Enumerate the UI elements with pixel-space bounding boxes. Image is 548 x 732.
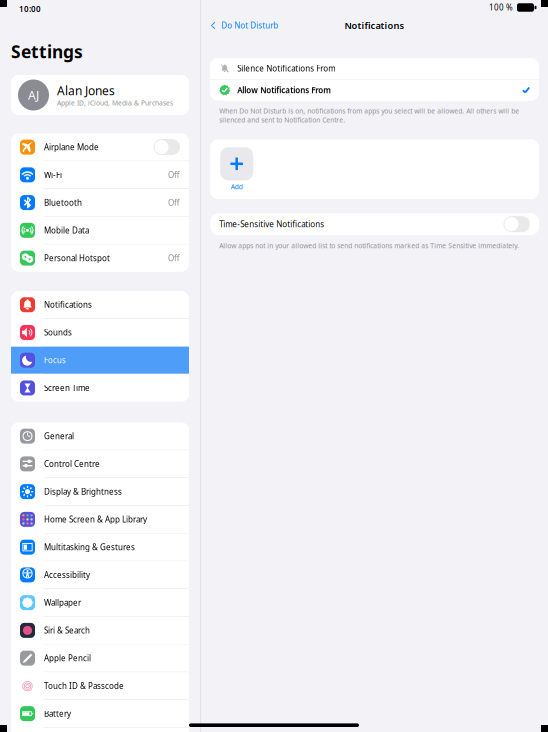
button[interactable]: Do Not Disturb [209, 16, 278, 35]
staticText: Focus [44, 355, 66, 365]
staticText: Off [168, 253, 180, 263]
button[interactable]: Battery [11, 700, 189, 727]
staticText: Settings [11, 40, 83, 63]
staticText: Battery [44, 708, 71, 719]
staticText: Off [168, 197, 180, 208]
staticText: General [44, 431, 74, 441]
button[interactable]: Sounds [11, 319, 189, 346]
staticText: Notifications [44, 299, 92, 310]
staticText: Allow Notifications From [237, 85, 331, 95]
button[interactable]: Wallpaper [11, 589, 189, 616]
staticText: 100 % [489, 2, 513, 13]
button[interactable]: Siri & Search [11, 617, 189, 644]
button[interactable]: Time-Sensitive Notifications [210, 213, 539, 235]
staticText: Bluetooth [44, 197, 82, 208]
button[interactable]: Multitasking & Gestures [11, 534, 189, 561]
button[interactable]: Screen Time [11, 374, 189, 401]
button[interactable]: Accessibility [11, 561, 189, 588]
button[interactable]: Mobile Data [11, 217, 189, 244]
staticText: Airplane Mode [44, 142, 99, 152]
button[interactable]: AJ [11, 75, 189, 115]
staticText: Personal Hotspot [44, 253, 110, 263]
staticText: Home Screen & App Library [44, 514, 147, 525]
button[interactable]: Wi-Fi [11, 161, 189, 188]
button[interactable]: Apple Pencil [11, 645, 189, 672]
button[interactable]: Home Screen & App Library [11, 506, 189, 533]
button[interactable]: Silence Notifications From [210, 58, 539, 79]
staticText: Silence Notifications From [237, 63, 335, 74]
button[interactable]: Allow Notifications From [210, 80, 539, 101]
staticText: Siri & Search [44, 625, 90, 636]
button[interactable]: Control Centre [11, 450, 189, 477]
button[interactable]: Add [220, 147, 253, 191]
button[interactable]: Airplane Mode [11, 133, 189, 161]
staticText: Alan Jones [57, 83, 115, 98]
staticText: Mobile Data [44, 225, 89, 236]
staticText: Apple ID, iCloud, Media & Purchases [57, 99, 173, 107]
staticText: Touch ID & Passcode [44, 681, 124, 691]
button[interactable]: Notifications [11, 291, 189, 318]
staticText: Wallpaper [44, 597, 81, 608]
staticText: Off [168, 169, 180, 180]
staticText: 10:00 [19, 4, 41, 14]
staticText: Control Centre [44, 459, 100, 469]
staticText: Sounds [44, 327, 72, 338]
button[interactable]: Touch ID & Passcode [11, 672, 189, 699]
button[interactable]: General [11, 423, 189, 450]
staticText: Accessibility [44, 570, 90, 580]
staticText: Screen Time [44, 383, 90, 393]
staticText: When Do Not Disturb is on, notifications… [219, 107, 519, 124]
staticText: Display & Brightness [44, 486, 122, 497]
staticText: Apple Pencil [44, 653, 91, 663]
staticText: Time-Sensitive Notifications [219, 219, 324, 229]
staticText: AJ [28, 87, 39, 103]
staticText: Add [231, 182, 243, 191]
staticText: Multitasking & Gestures [44, 542, 135, 552]
button[interactable]: Focus [11, 347, 189, 374]
staticText: Do Not Disturb [221, 20, 278, 31]
button[interactable]: Bluetooth [11, 189, 189, 216]
staticText: Notifications [345, 19, 405, 32]
button[interactable]: Personal Hotspot [11, 244, 189, 272]
button[interactable]: Display & Brightness [11, 478, 189, 505]
staticText: Allow apps not in your allowed list to s… [219, 241, 519, 250]
staticText: Wi-Fi [44, 169, 62, 180]
